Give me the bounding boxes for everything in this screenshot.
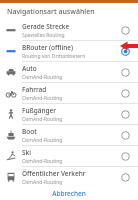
button[interactable]: Gerade Strecke — [112, 20, 138, 40]
button[interactable]: Ski — [0, 146, 138, 166]
button[interactable]: Auto — [112, 62, 138, 82]
staticText: OsmAnd-Routing — [22, 137, 63, 144]
button[interactable]: Fußgänger — [112, 104, 138, 124]
button[interactable]: Fußgänger — [0, 104, 138, 124]
button[interactable]: Auto — [0, 62, 138, 82]
button[interactable]: Fahrrad — [0, 83, 138, 103]
staticText: OsmAnd-Routing — [22, 179, 63, 186]
button[interactable]: Ski — [112, 146, 138, 166]
staticText: OsmAnd-Routing — [22, 158, 63, 165]
staticText: BRouter (offline) — [22, 43, 74, 52]
staticText: Spezielles Routing — [22, 32, 65, 39]
button[interactable]: Öffentlicher Verkehr — [0, 167, 138, 187]
staticText: Boot — [22, 127, 37, 136]
button[interactable]: BRouter (offline) — [112, 41, 138, 61]
button[interactable]: Abbrechen — [0, 187, 138, 200]
staticText: Abbrechen — [52, 189, 86, 198]
button[interactable]: Boot — [0, 125, 138, 145]
staticText: Öffentlicher Verkehr — [22, 169, 86, 178]
staticText: Gerade Strecke — [22, 22, 70, 31]
button[interactable]: Gerade Strecke — [0, 20, 138, 40]
staticText: Fußgänger — [22, 106, 57, 115]
staticText: Navigationsart auswählen — [7, 7, 95, 17]
staticText: OsmAnd-Routing — [22, 116, 63, 123]
button[interactable]: Boot — [112, 125, 138, 145]
button[interactable]: BRouter (offline) — [0, 41, 138, 61]
staticText: OsmAnd-Routing — [22, 74, 63, 81]
button[interactable]: Öffentlicher Verkehr — [112, 167, 138, 187]
staticText: Fahrrad — [22, 85, 47, 94]
staticText: Ski — [22, 148, 31, 157]
button[interactable]: Fahrrad — [112, 83, 138, 103]
staticText: Auto — [22, 64, 37, 73]
staticText: OsmAnd-Routing — [22, 95, 63, 102]
staticText: Routing von Drittanbietern — [22, 53, 86, 60]
